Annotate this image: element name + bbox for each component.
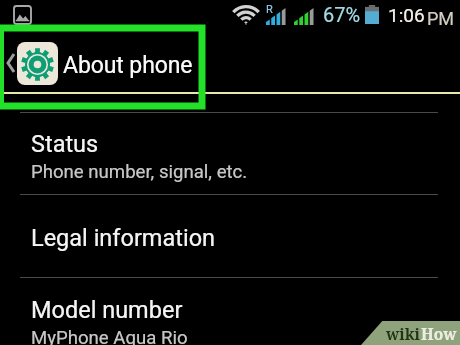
staticText: How	[421, 323, 457, 344]
staticText: Model number	[31, 296, 183, 324]
staticText: R	[266, 3, 273, 16]
staticText: 1:06	[388, 4, 425, 26]
staticText: wiki	[386, 323, 421, 344]
button[interactable]: Status	[0, 115, 460, 194]
staticText: Phone number, signal, etc.	[31, 161, 248, 183]
staticText: Status	[31, 130, 99, 158]
staticText: Legal information	[31, 224, 216, 252]
button[interactable]: Legal information	[0, 198, 460, 277]
button[interactable]: Navigate up	[0, 30, 200, 92]
staticText: MyPhone Aqua Rio	[31, 327, 188, 345]
other: Navigate up	[8, 54, 14, 72]
staticText: PM	[427, 8, 455, 29]
button[interactable]: Model number	[0, 281, 460, 345]
staticText: About phone	[63, 52, 193, 79]
staticText: 67%	[323, 3, 361, 26]
